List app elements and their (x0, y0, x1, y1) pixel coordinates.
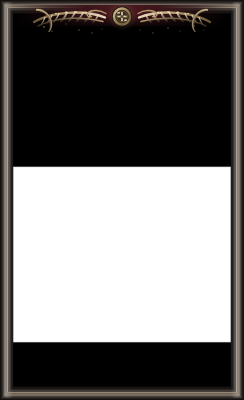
button[interactable]: Ornate framed content panel (0, 0, 244, 400)
